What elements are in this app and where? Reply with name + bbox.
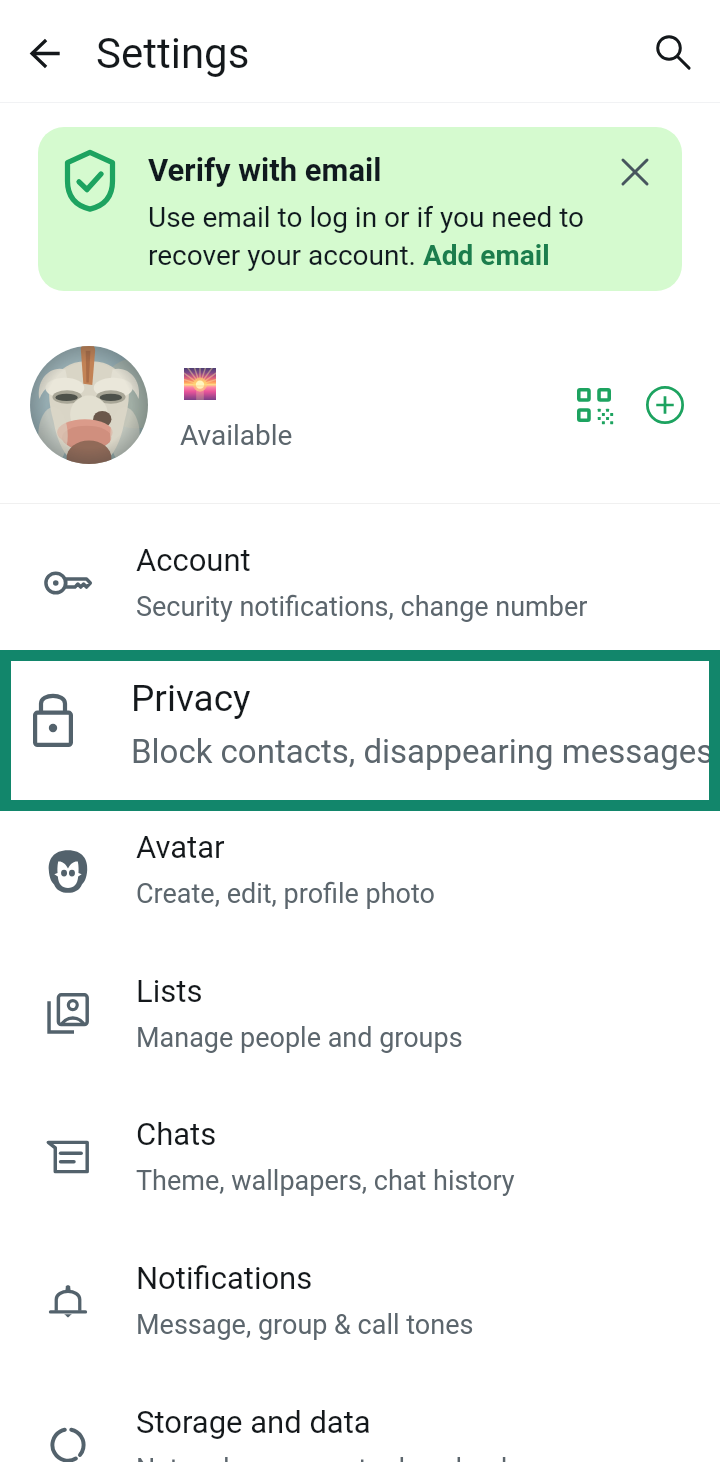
staticText: Lists [136, 973, 203, 1009]
staticText: Account [136, 542, 251, 578]
button[interactable]: Avatar [0, 798, 720, 941]
staticText: Block contacts, disappearing messages [131, 732, 709, 771]
staticText: Security notifications, change number [136, 591, 588, 623]
button[interactable]: Verify with email [38, 127, 682, 291]
staticText: Chats [136, 1116, 217, 1152]
button[interactable]: QR code [563, 374, 625, 436]
staticText: Network usage, auto-download [136, 1453, 508, 1462]
button[interactable]: Chats [0, 1085, 720, 1228]
staticText: Use email to log in or if you need to [148, 201, 585, 234]
button[interactable]: Add account [634, 374, 696, 436]
staticText: Verify with email [148, 152, 382, 188]
staticText: Settings [96, 29, 250, 78]
staticText: Storage and data [136, 1404, 371, 1440]
staticText: Privacy [131, 677, 251, 720]
staticText: Create, edit, profile photo [136, 878, 435, 910]
button[interactable]: Notifications [0, 1229, 720, 1372]
staticText: Theme, wallpapers, chat history [136, 1165, 515, 1197]
staticText: Notifications [136, 1260, 313, 1296]
button[interactable]: Lists [0, 942, 720, 1085]
button[interactable]: Back [13, 20, 77, 84]
button[interactable]: Available [0, 346, 720, 464]
staticText: recover your account. Add email [148, 239, 550, 272]
button[interactable]: Storage and data [0, 1373, 720, 1462]
button[interactable]: Search [641, 20, 705, 84]
staticText: Manage people and groups [136, 1022, 463, 1054]
button[interactable]: Account [0, 511, 720, 654]
button[interactable]: Privacy [11, 661, 709, 800]
staticText: Avatar [136, 829, 225, 865]
staticText: Available [180, 419, 293, 452]
staticText: Message, group & call tones [136, 1309, 474, 1341]
button[interactable]: Dismiss [607, 144, 663, 200]
